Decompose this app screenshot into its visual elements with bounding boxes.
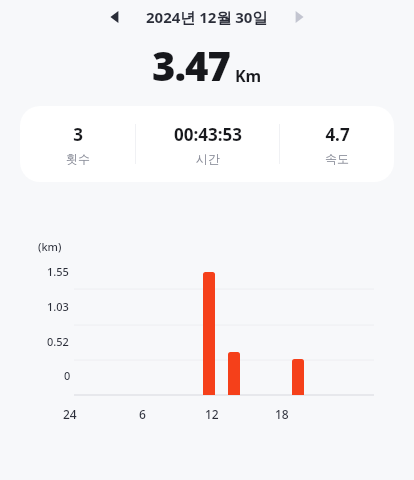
- staticText: 18: [275, 406, 289, 422]
- staticText: 속도: [325, 151, 349, 166]
- staticText: 6: [139, 406, 146, 422]
- staticText: 횟수: [66, 151, 90, 166]
- staticText: 0: [64, 368, 71, 383]
- button[interactable]: 00:43:53: [136, 123, 279, 166]
- staticText: 12: [205, 406, 219, 422]
- button[interactable]: 3: [20, 123, 135, 166]
- staticText: 1.55: [47, 264, 69, 279]
- staticText: 24: [63, 406, 77, 422]
- button[interactable]: Previous day: [100, 2, 130, 32]
- staticText: 3.47: [152, 38, 230, 92]
- staticText: Km: [235, 65, 262, 87]
- button[interactable]: Next day: [284, 2, 314, 32]
- staticText: 4.7: [325, 123, 350, 146]
- staticText: 0.52: [47, 334, 69, 349]
- staticText: 시간: [196, 151, 220, 166]
- staticText: 00:43:53: [174, 123, 242, 146]
- staticText: 3: [73, 123, 83, 146]
- staticText: 1.03: [47, 299, 69, 314]
- staticText: 2024년 12월 30일: [146, 7, 268, 27]
- staticText: (km): [38, 239, 62, 254]
- button[interactable]: 4.7: [280, 123, 394, 166]
